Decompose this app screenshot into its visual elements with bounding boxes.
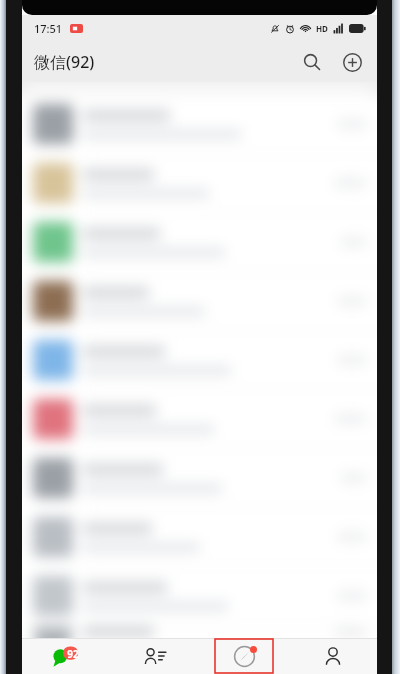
button[interactable] <box>22 567 377 625</box>
button[interactable]: Search <box>299 49 325 75</box>
button[interactable] <box>22 272 377 330</box>
button[interactable] <box>22 390 377 448</box>
button[interactable] <box>22 449 377 507</box>
button[interactable]: Chats <box>22 638 110 674</box>
button[interactable]: Discover <box>199 638 288 674</box>
button[interactable]: Add <box>339 49 365 75</box>
button[interactable]: Me <box>288 638 377 674</box>
button[interactable] <box>22 154 377 212</box>
button[interactable]: Contacts <box>110 638 199 674</box>
button[interactable] <box>22 213 377 271</box>
button[interactable] <box>22 331 377 389</box>
button[interactable] <box>22 508 377 566</box>
button[interactable] <box>22 95 377 153</box>
staticText: HD <box>316 23 328 34</box>
button[interactable] <box>22 626 377 638</box>
staticText: 17:51 <box>34 21 63 36</box>
staticText: 92 <box>67 647 79 661</box>
staticText: 微信(92) <box>34 51 95 73</box>
